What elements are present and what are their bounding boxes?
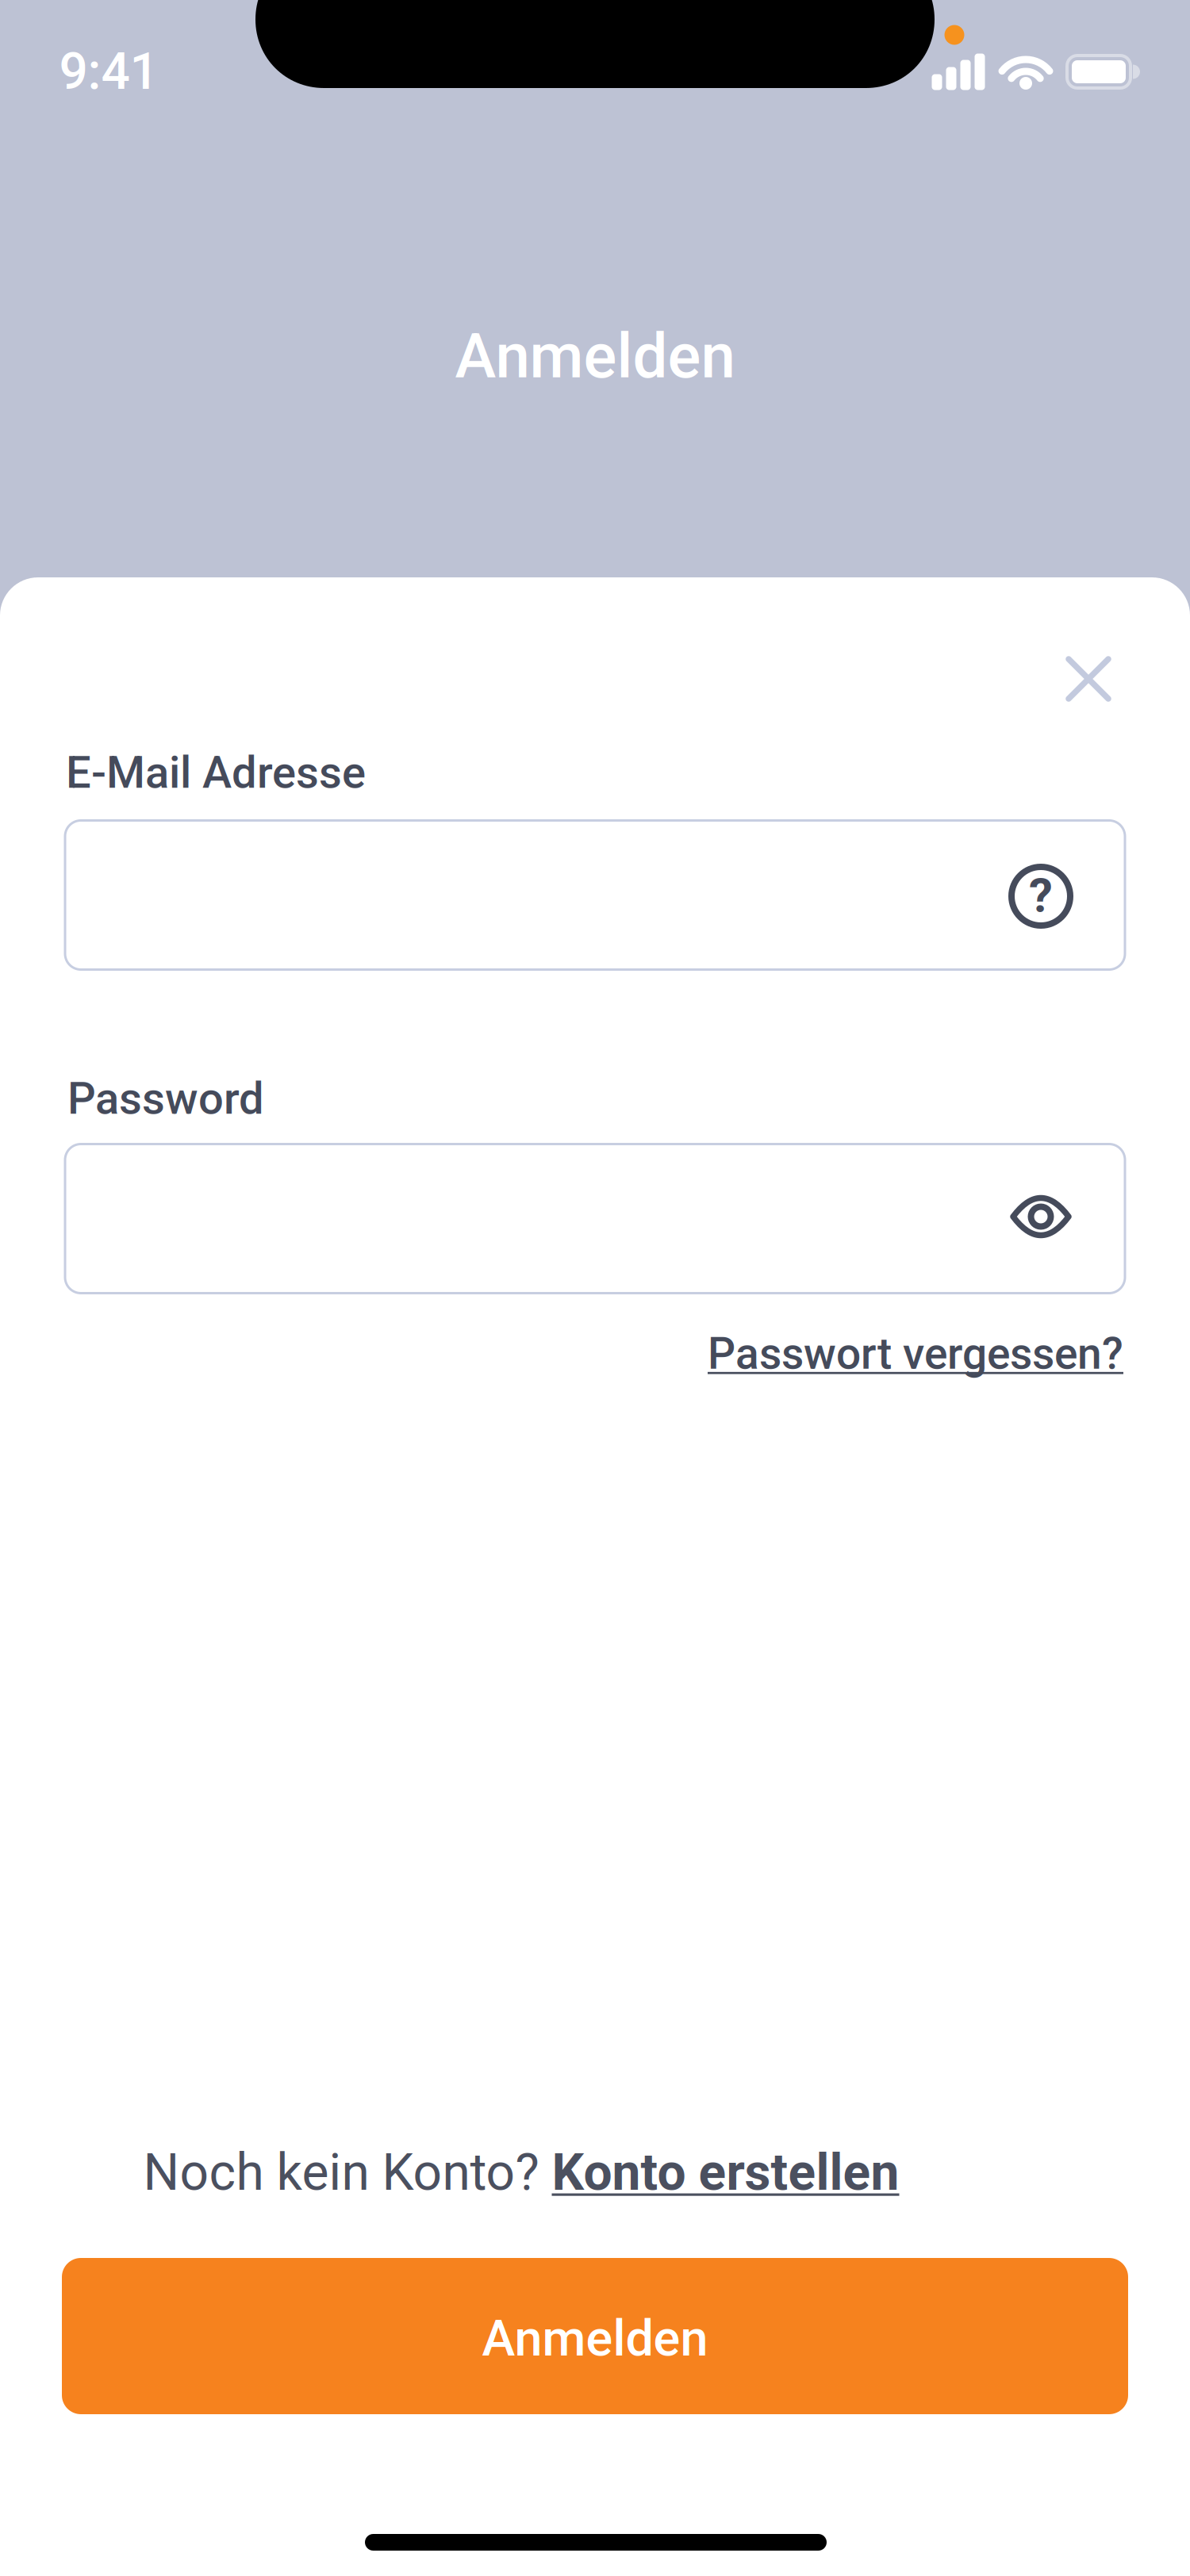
button[interactable]: Anmelden	[62, 2258, 1128, 2414]
staticText: Password	[67, 1072, 264, 1124]
staticText: Anmelden	[455, 320, 735, 392]
staticText: Passwort vergessen?	[708, 1328, 1123, 1379]
staticText: ?	[1029, 867, 1053, 923]
button[interactable]: Konto erstellen	[552, 2143, 899, 2202]
button[interactable]: Password	[64, 1143, 1126, 1294]
button[interactable]: Schließen	[1053, 643, 1124, 715]
staticText: Anmelden	[482, 2309, 708, 2368]
staticText: E-Mail Adresse	[66, 746, 366, 798]
button[interactable]: Hilfe	[1005, 861, 1077, 932]
button[interactable]: Passwort anzeigen	[1001, 1185, 1081, 1248]
staticText: Konto erstellen	[552, 2143, 899, 2202]
staticText: 9:41	[59, 42, 158, 101]
button[interactable]: E-Mail Adresse	[64, 819, 1126, 971]
button[interactable]: Passwort vergessen?	[708, 1328, 1123, 1379]
staticText: Noch kein Konto?	[143, 2143, 552, 2202]
